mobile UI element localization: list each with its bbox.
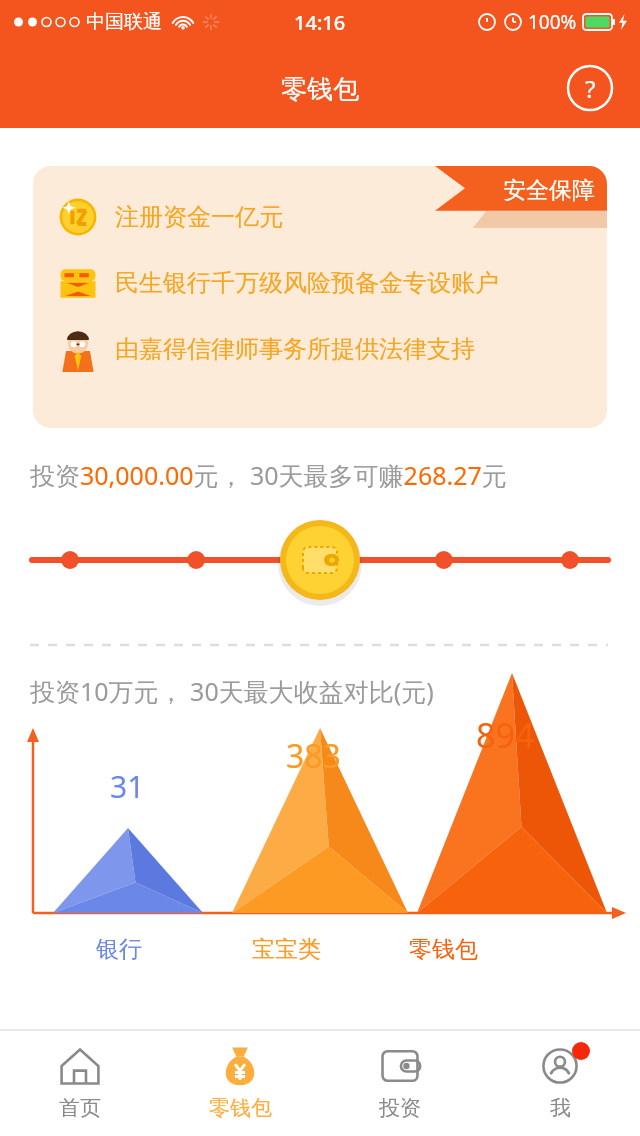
staticText: 安全保障 bbox=[503, 176, 595, 205]
button[interactable]: 首页 bbox=[0, 1031, 160, 1136]
staticText: 民生银行千万级风险预备金专设账户 bbox=[115, 268, 499, 298]
staticText: 零钱包 bbox=[409, 935, 478, 964]
staticText: 14:16 bbox=[294, 9, 346, 36]
button[interactable]: Help bbox=[566, 64, 614, 112]
staticText: 零钱包 bbox=[281, 73, 359, 106]
staticText: 宝宝类 bbox=[252, 935, 321, 964]
staticText: 投资10万元， 30天最大收益对比(元) bbox=[30, 674, 640, 708]
staticText: 投资30,000.00元， 30天最多可赚268.27元 bbox=[30, 458, 640, 492]
staticText: 零钱包 bbox=[209, 1095, 272, 1121]
button[interactable]: 投资 bbox=[320, 1031, 480, 1136]
staticText: 首页 bbox=[59, 1095, 101, 1121]
staticText: 投资 bbox=[379, 1095, 421, 1121]
staticText: 383 bbox=[286, 734, 341, 778]
staticText: 由嘉得信律师事务所提供法律支持 bbox=[115, 334, 475, 364]
staticText: 银行 bbox=[96, 935, 142, 964]
staticText: 31 bbox=[110, 766, 145, 807]
button[interactable]: 我 bbox=[480, 1031, 640, 1136]
staticText: 100% bbox=[528, 9, 577, 35]
button[interactable]: 安全保障 bbox=[33, 166, 607, 428]
staticText: 我 bbox=[550, 1095, 571, 1121]
staticText: ? bbox=[585, 72, 596, 105]
staticText: 中国联通 bbox=[86, 10, 162, 34]
button[interactable]: 零钱包 bbox=[160, 1031, 320, 1136]
staticText: 894 bbox=[476, 712, 535, 758]
staticText: 注册资金一亿元 bbox=[115, 202, 283, 232]
